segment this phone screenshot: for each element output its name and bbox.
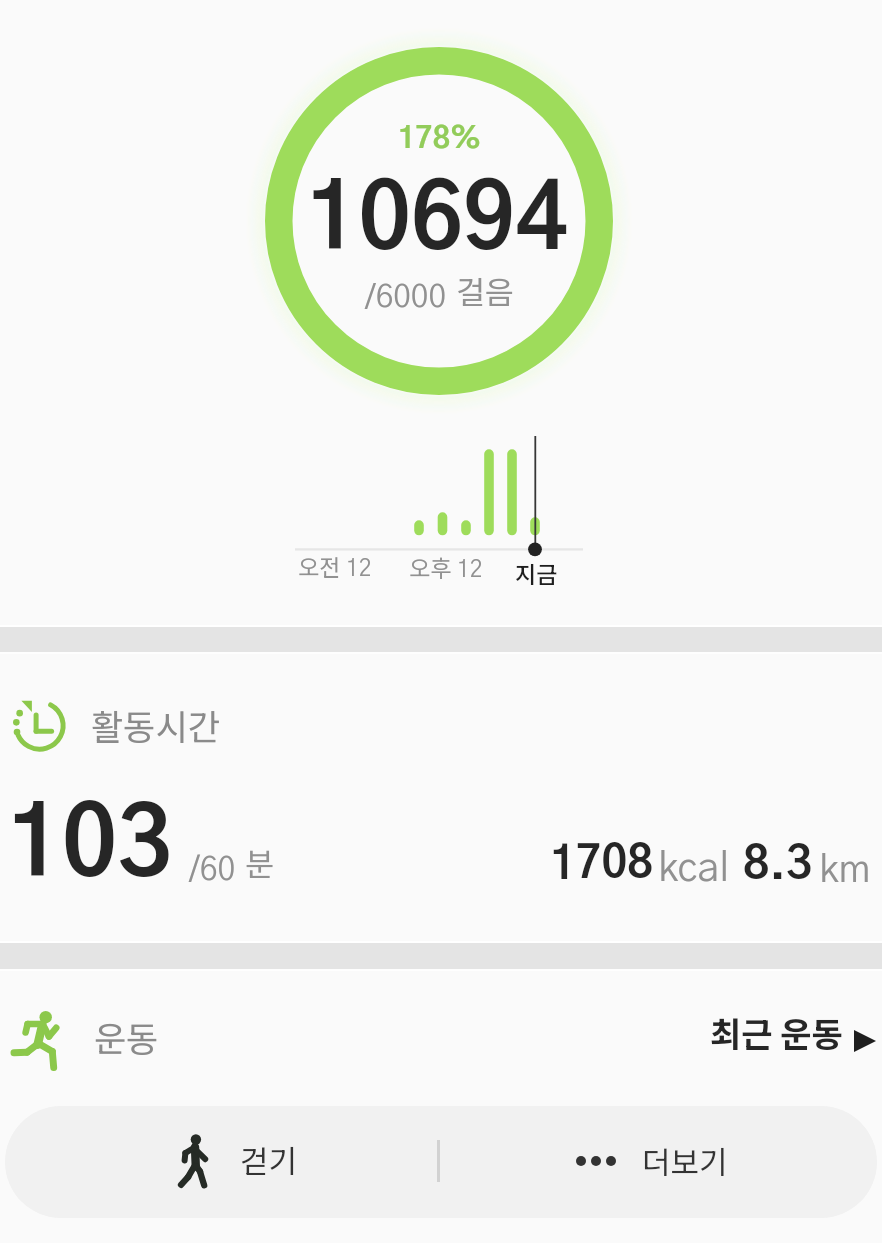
staticText: 최근 운동: [710, 1008, 843, 1057]
other: Active time: [8, 694, 64, 750]
staticText: 12: [346, 558, 372, 581]
staticText: 1708: [550, 843, 654, 887]
button[interactable]: [5, 1106, 441, 1218]
other: More: [576, 1156, 616, 1166]
staticText: 178%: [398, 124, 482, 154]
other: Exercise: [8, 1005, 70, 1070]
staticText: 걷기: [240, 1137, 298, 1182]
staticText: 오전: [298, 549, 341, 582]
staticText: 걸음: [456, 267, 514, 313]
staticText: 10694: [306, 177, 568, 266]
staticText: 12: [457, 559, 483, 582]
staticText: 운동: [94, 1011, 159, 1062]
staticText: 더보기: [642, 1138, 728, 1183]
button[interactable]: [441, 1106, 877, 1218]
staticText: /60: [189, 854, 236, 886]
staticText: 활동시간: [91, 699, 220, 750]
staticText: 103: [7, 800, 173, 894]
staticText: 분: [245, 839, 274, 885]
staticText: km: [819, 851, 871, 890]
staticText: 오후: [409, 550, 452, 583]
staticText: /6000: [365, 282, 447, 314]
staticText: 8.3: [743, 843, 813, 888]
button[interactable]: 최근 운동: [704, 1002, 879, 1063]
other: Walking: [170, 1128, 225, 1195]
staticText: kcal: [658, 849, 730, 889]
staticText: 지금: [515, 556, 558, 589]
